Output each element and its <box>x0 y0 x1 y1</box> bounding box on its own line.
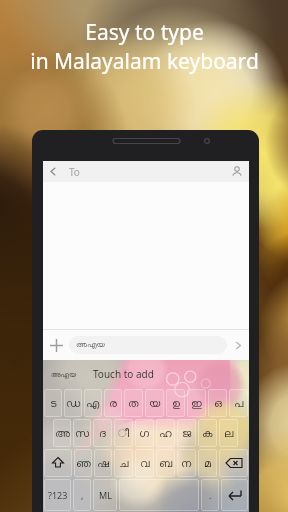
staticText: ത <box>128 398 139 409</box>
button[interactable]: ജ <box>177 419 196 447</box>
button[interactable]: ത <box>124 389 143 417</box>
button[interactable]: ര <box>104 389 122 417</box>
button[interactable]: Send <box>227 330 249 360</box>
button[interactable]: ഷ <box>94 449 112 477</box>
staticText: ML <box>99 489 112 501</box>
button[interactable]: മ <box>198 449 217 477</box>
button[interactable]: അഎയ <box>43 360 85 388</box>
button[interactable]: . <box>201 479 219 511</box>
staticText: അഎയ <box>51 371 77 378</box>
button[interactable]: എ <box>84 389 102 417</box>
staticText: ഹ <box>159 428 172 439</box>
staticText: എ <box>86 398 100 409</box>
staticText: ഞ <box>76 458 91 469</box>
staticText: , <box>81 489 84 501</box>
staticText: യ <box>149 398 161 409</box>
staticText: ബ <box>159 458 173 469</box>
button[interactable]: അഎയ <box>69 336 227 354</box>
button[interactable]: ഞ <box>74 449 92 477</box>
staticText: മ <box>204 458 211 469</box>
button[interactable]: Add <box>43 330 69 360</box>
button[interactable]: Touch to add <box>85 360 249 388</box>
staticText: ജ <box>182 428 192 439</box>
staticText: Easy to type <box>85 18 204 47</box>
staticText: ദ <box>99 428 106 439</box>
button[interactable]: ഗ <box>135 419 154 447</box>
staticText: അ <box>55 428 70 439</box>
staticText: ട <box>50 398 57 409</box>
button[interactable]: ഇ <box>187 389 206 417</box>
staticText: സ <box>75 428 90 439</box>
button[interactable]: Delete <box>219 449 248 477</box>
button[interactable]: ഡ <box>64 389 82 417</box>
staticText: To <box>69 165 80 179</box>
button[interactable]: ക <box>198 419 217 447</box>
button[interactable]: Enter <box>221 479 248 511</box>
staticText: ീ <box>118 428 130 439</box>
staticText: ഗ <box>139 428 150 439</box>
button[interactable]: പ <box>229 389 248 417</box>
staticText: in Malayalam keyboard <box>30 47 259 76</box>
staticText: Touch to add <box>93 367 154 381</box>
button[interactable]: ച <box>114 449 133 477</box>
staticText: . <box>209 489 212 501</box>
staticText: ?123 <box>48 489 68 501</box>
staticText: പ <box>234 398 244 409</box>
button[interactable]: ീ <box>114 419 133 447</box>
button[interactable]: ഒ <box>208 389 227 417</box>
staticText: ന <box>181 458 192 469</box>
button[interactable]: ഉ <box>166 389 185 417</box>
staticText: ഷ <box>97 458 110 469</box>
button[interactable]: Shift <box>44 449 72 477</box>
button[interactable]: ന <box>177 449 196 477</box>
button[interactable]: യ <box>145 389 164 417</box>
button[interactable]: Contacts <box>225 161 249 182</box>
staticText: വ <box>140 458 150 469</box>
staticText: ഒ <box>214 398 222 409</box>
button[interactable]: ല <box>219 419 238 447</box>
button[interactable]: സ <box>73 419 91 447</box>
button[interactable]: Back <box>43 161 63 182</box>
staticText: ഡ <box>66 398 81 409</box>
staticText: ച <box>119 458 129 469</box>
button[interactable]: അ <box>53 419 71 447</box>
staticText: ക <box>202 428 213 439</box>
button[interactable]: ML <box>93 479 117 511</box>
button[interactable]: , <box>73 479 91 511</box>
button[interactable]: ഹ <box>156 419 175 447</box>
button[interactable]: വ <box>135 449 154 477</box>
staticText: അഎയ <box>76 341 105 349</box>
staticText: ഇ <box>191 398 202 409</box>
button[interactable]: ദ <box>93 419 112 447</box>
button[interactable] <box>119 479 199 511</box>
staticText: ര <box>109 398 117 409</box>
button[interactable]: ട <box>44 389 62 417</box>
button[interactable]: ബ <box>156 449 175 477</box>
staticText: ഉ <box>172 398 180 409</box>
staticText: ല <box>224 428 234 439</box>
button[interactable]: ?123 <box>44 479 71 511</box>
